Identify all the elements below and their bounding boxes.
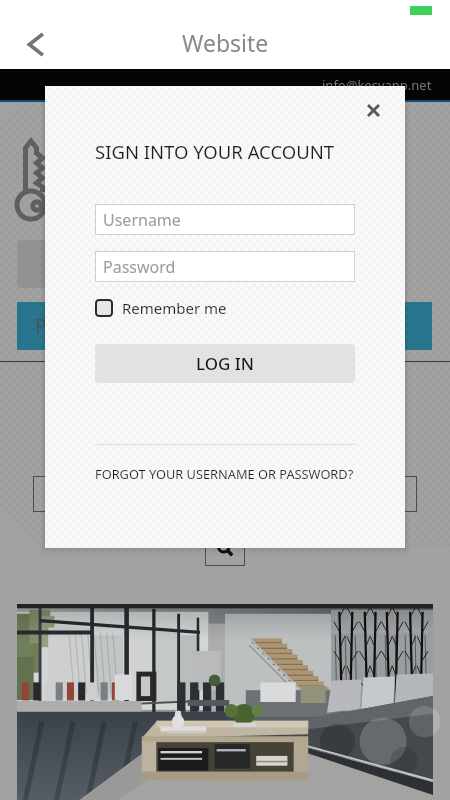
staticText: Password bbox=[103, 256, 176, 278]
staticText: Username bbox=[103, 209, 181, 231]
staticText: LOGIN bbox=[51, 253, 104, 276]
button[interactable]: Close bbox=[356, 93, 390, 127]
staticText: Website bbox=[182, 27, 269, 58]
button[interactable]: FORGOT YOUR USERNAME OR PASSWORD? bbox=[95, 465, 354, 482]
button[interactable]: Remember me bbox=[95, 298, 227, 318]
staticText: Remember me bbox=[122, 298, 227, 318]
button[interactable]: LOG IN bbox=[95, 344, 355, 383]
staticText: PROPERTIES bbox=[35, 313, 146, 339]
staticText: LOG IN bbox=[196, 352, 255, 375]
staticText: info@kesvapp.net bbox=[322, 76, 432, 94]
staticText: SIGN INTO YOUR ACCOUNT bbox=[95, 139, 335, 164]
button[interactable]: Back bbox=[12, 21, 58, 67]
